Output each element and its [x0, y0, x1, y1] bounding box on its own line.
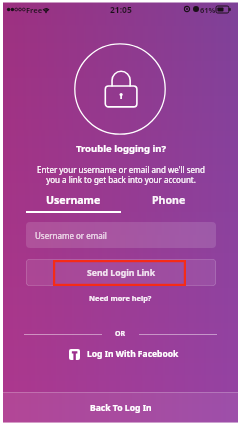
staticText: Username — [46, 193, 101, 207]
button[interactable]: Need more help? — [83, 290, 158, 306]
staticText: Enter your username or email and we'll s… — [37, 164, 205, 186]
staticText: Username or email — [35, 230, 107, 241]
staticText: 61% — [200, 5, 216, 15]
button[interactable]: Username — [26, 193, 121, 213]
button[interactable]: Send Login Link — [26, 259, 216, 286]
staticText: Free — [26, 5, 43, 15]
button[interactable]: Log In With Facebook — [69, 345, 179, 363]
staticText: Back To Log In — [90, 402, 152, 414]
button[interactable]: Phone — [121, 193, 216, 213]
staticText: Log In With Facebook — [87, 348, 179, 360]
staticText: 21:05 — [110, 4, 132, 16]
staticText: Phone — [152, 193, 186, 207]
staticText: Need more help? — [89, 293, 152, 303]
staticText: Trouble logging in? — [76, 142, 166, 155]
button[interactable]: Back To Log In — [3, 392, 238, 422]
button[interactable]: Username or email — [26, 222, 216, 248]
staticText: Send Login Link — [87, 267, 156, 279]
staticText: OR — [115, 329, 126, 339]
